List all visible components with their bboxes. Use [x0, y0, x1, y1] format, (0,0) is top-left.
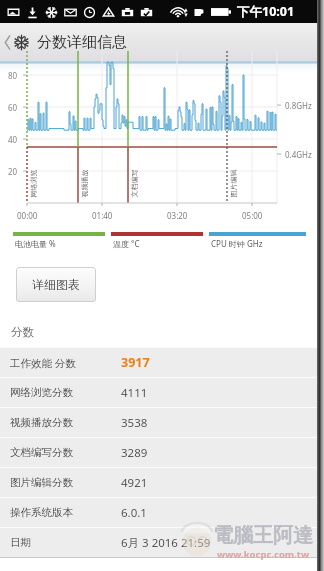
button[interactable]: 图片编辑分数: [0, 468, 324, 497]
button[interactable]: 日期: [0, 528, 324, 557]
staticText: CPU 时钟 GHz: [211, 238, 263, 249]
button[interactable]: 详细图表: [16, 267, 96, 302]
staticText: 温度 °C: [113, 238, 140, 249]
staticText: 网络浏览分数: [10, 386, 73, 399]
staticText: 视频播放: [79, 169, 88, 197]
staticText: 图片编辑分数: [10, 476, 73, 489]
staticText: 详细图表: [32, 277, 80, 292]
staticText: 60: [8, 102, 18, 113]
staticText: 80: [8, 70, 18, 81]
button[interactable]: 网络浏览分数: [0, 378, 324, 407]
button[interactable]: 工作效能 分数: [0, 348, 324, 377]
staticText: 6.0.1: [121, 505, 147, 521]
staticText: 视频播放分数: [10, 416, 73, 429]
staticText: 电池电量 %: [15, 238, 56, 249]
staticText: 6月 3 2016 21:59: [121, 535, 211, 551]
button[interactable]: Back: [0, 28, 32, 57]
staticText: 3917: [121, 354, 150, 371]
button[interactable]: 视频播放分数: [0, 408, 324, 437]
staticText: 0.8GHz: [285, 100, 312, 111]
staticText: 文档编写分数: [10, 446, 73, 459]
staticText: 00:00: [17, 210, 38, 221]
staticText: 工作效能 分数: [10, 356, 76, 370]
staticText: www.kocpc.com.tw: [217, 548, 310, 561]
staticText: 電腦王阿達: [213, 523, 313, 548]
staticText: 05:00: [242, 210, 263, 221]
button[interactable]: 文档编写分数: [0, 438, 324, 467]
staticText: 20: [8, 166, 18, 177]
button[interactable]: 操作系统版本: [0, 498, 324, 527]
staticText: 3538: [121, 415, 148, 431]
staticText: 03:20: [167, 210, 188, 221]
staticText: 4921: [121, 475, 148, 491]
staticText: 分数详细信息: [37, 33, 127, 52]
staticText: 文档编写: [129, 169, 138, 197]
staticText: 分数: [11, 325, 34, 339]
staticText: 日期: [10, 536, 31, 549]
staticText: 4111: [121, 385, 148, 401]
staticText: 3289: [121, 445, 148, 461]
staticText: 网络浏览: [28, 169, 37, 197]
staticText: 操作系统版本: [10, 506, 73, 519]
staticText: 图片编辑: [228, 169, 237, 197]
staticText: 0.4GHz: [285, 149, 312, 160]
staticText: 40: [8, 134, 18, 145]
staticText: 下午10:01: [237, 3, 295, 20]
staticText: 01:40: [92, 210, 113, 221]
